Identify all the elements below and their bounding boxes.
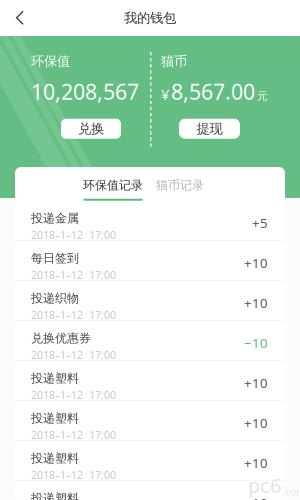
staticText: +5 — [252, 214, 268, 232]
staticText: 每日签到 — [31, 251, 79, 266]
staticText: pc6 — [248, 472, 281, 499]
staticText: +10 — [244, 374, 268, 392]
staticText: +10 — [244, 454, 268, 472]
staticText: ¥ — [161, 84, 169, 104]
staticText: 2018–1–12 17:00 — [31, 268, 116, 282]
button[interactable]: 投递塑料 — [15, 401, 285, 441]
staticText: 投递塑料 — [31, 411, 79, 426]
staticText: 环保值 — [31, 53, 70, 69]
staticText: 10,208,567 — [31, 77, 139, 106]
button[interactable]: 每日签到 — [15, 241, 285, 281]
button[interactable]: 投递织物 — [15, 281, 285, 321]
staticText: 2018–1–12 17:00 — [31, 428, 116, 442]
staticText: 2018–1–12 17:00 — [31, 228, 116, 242]
button[interactable]: 环保值记录 — [82, 167, 144, 201]
button[interactable]: 提现 — [179, 119, 240, 139]
staticText: 提现 — [196, 120, 222, 137]
staticText: +10 — [244, 494, 268, 500]
staticText: 元 — [257, 90, 268, 103]
staticText: 2018–1–12 17:00 — [31, 468, 116, 482]
staticText: 投递塑料 — [31, 451, 79, 466]
staticText: −10 — [244, 334, 268, 352]
staticText: 环保值记录 — [83, 178, 143, 193]
staticText: .com — [282, 484, 300, 499]
button[interactable]: 投递塑料 — [15, 441, 285, 481]
button[interactable]: 返回 — [0, 0, 40, 36]
staticText: 猫币 — [161, 53, 187, 69]
staticText: 投递塑料 — [31, 371, 79, 386]
staticText: 投递金属 — [31, 211, 79, 226]
button[interactable]: 投递塑料 — [15, 481, 285, 500]
staticText: +10 — [244, 294, 268, 312]
staticText: 投递织物 — [31, 291, 79, 306]
button[interactable]: 投递金属 — [15, 201, 285, 241]
button[interactable]: 兑换优惠券 — [15, 321, 285, 361]
staticText: 我的钱包 — [124, 10, 176, 26]
staticText: 2018–1–12 17:00 — [31, 388, 116, 402]
staticText: 8,567.00 — [171, 77, 255, 106]
button[interactable]: 猫币记录 — [155, 167, 205, 201]
staticText: 兑换 — [78, 120, 104, 137]
staticText: 投递塑料 — [31, 491, 79, 500]
staticText: +10 — [244, 254, 268, 272]
button[interactable]: 兑换 — [61, 119, 121, 139]
staticText: +10 — [244, 414, 268, 432]
staticText: 2018–1–12 17:00 — [31, 348, 116, 362]
staticText: 猫币记录 — [156, 178, 204, 193]
staticText: 2018–1–12 17:00 — [31, 308, 116, 322]
staticText: 兑换优惠券 — [31, 331, 91, 346]
button[interactable]: 投递塑料 — [15, 361, 285, 401]
